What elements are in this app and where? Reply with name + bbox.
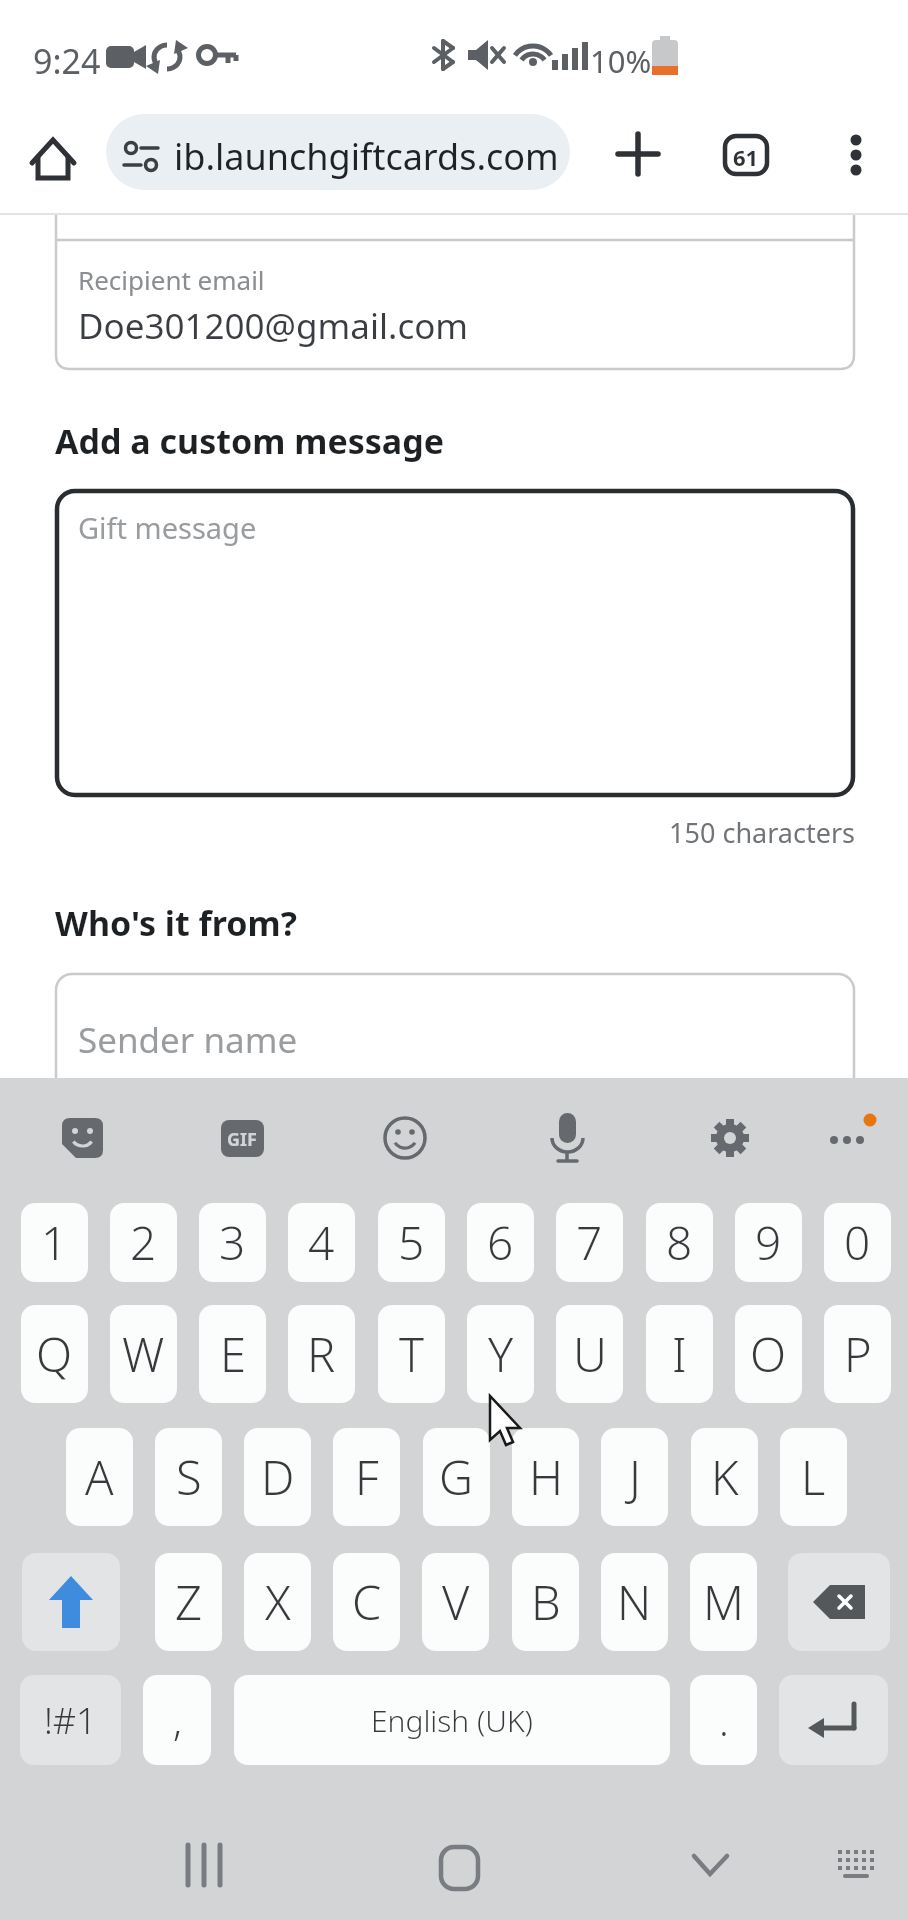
button[interactable]: 3 — [199, 1203, 266, 1282]
button[interactable]: 4 — [288, 1203, 355, 1282]
button[interactable]: 2 — [110, 1203, 177, 1282]
button[interactable]: L — [780, 1428, 847, 1526]
staticText: !#1 — [44, 1696, 97, 1745]
button[interactable] — [820, 1830, 890, 1900]
staticText: 6 — [487, 1211, 514, 1274]
button[interactable]: R — [288, 1305, 355, 1403]
button[interactable]: B — [512, 1553, 579, 1651]
button[interactable] — [414, 1830, 504, 1900]
button[interactable]: O — [735, 1305, 802, 1403]
button[interactable] — [818, 1108, 878, 1168]
staticText: Y — [488, 1322, 514, 1386]
staticText: 0 — [844, 1211, 871, 1274]
staticText: . — [719, 1693, 729, 1747]
button[interactable]: English (UK) — [234, 1675, 670, 1765]
button[interactable] — [788, 1553, 890, 1651]
button[interactable]: J — [601, 1428, 668, 1526]
staticText: ib.launchgiftcards.com — [174, 132, 559, 181]
button[interactable]: Z — [155, 1553, 222, 1651]
button[interactable]: Recipient email — [56, 240, 854, 369]
button[interactable]: !#1 — [20, 1675, 121, 1765]
button[interactable]: 8 — [646, 1203, 713, 1282]
staticText: H — [529, 1445, 563, 1509]
button[interactable]: 5 — [378, 1203, 445, 1282]
staticText: X — [265, 1570, 291, 1634]
button[interactable]: Gift message — [57, 491, 853, 795]
button[interactable]: 61 — [716, 126, 776, 184]
button[interactable]: M — [690, 1553, 757, 1651]
staticText: R — [307, 1322, 336, 1386]
button[interactable]: P — [824, 1305, 891, 1403]
staticText: N — [617, 1570, 652, 1634]
button[interactable] — [212, 1108, 272, 1168]
button[interactable]: K — [691, 1428, 758, 1526]
button[interactable] — [826, 124, 886, 184]
staticText: 61 — [733, 142, 759, 172]
button[interactable]: F — [333, 1428, 400, 1526]
button[interactable]: D — [244, 1428, 311, 1526]
button[interactable] — [537, 1108, 597, 1168]
staticText: O — [750, 1322, 787, 1386]
button[interactable]: U — [556, 1305, 623, 1403]
button[interactable]: Q — [21, 1305, 88, 1403]
button[interactable]: 1 — [21, 1203, 88, 1282]
button[interactable] — [779, 1675, 888, 1765]
staticText: T — [399, 1322, 424, 1386]
button[interactable] — [375, 1108, 435, 1168]
button[interactable]: T — [378, 1305, 445, 1403]
staticText: 4 — [308, 1211, 335, 1274]
staticText: 9 — [755, 1211, 782, 1274]
button[interactable]: , — [143, 1675, 211, 1765]
button[interactable]: W — [110, 1305, 177, 1403]
staticText: A — [85, 1445, 114, 1509]
staticText: Add a custom message — [55, 418, 444, 464]
button[interactable]: V — [422, 1553, 489, 1651]
button[interactable]: 0 — [824, 1203, 891, 1282]
button[interactable] — [608, 124, 668, 184]
button[interactable]: 6 — [467, 1203, 534, 1282]
button[interactable] — [700, 1108, 760, 1168]
button[interactable]: X — [244, 1553, 311, 1651]
button[interactable]: . — [690, 1675, 757, 1765]
staticText: V — [442, 1570, 470, 1634]
staticText: K — [711, 1445, 739, 1509]
staticText: J — [629, 1445, 641, 1509]
staticText: 9:24 — [33, 38, 101, 84]
staticText: E — [220, 1322, 246, 1386]
staticText: U — [573, 1322, 607, 1386]
button[interactable]: ib.launchgiftcards.com — [106, 114, 570, 190]
staticText: English (UK) — [371, 1700, 533, 1741]
button[interactable]: Y — [467, 1305, 534, 1403]
staticText: 2 — [130, 1211, 157, 1274]
staticText: GIF — [227, 1127, 257, 1152]
button[interactable]: 7 — [556, 1203, 623, 1282]
button[interactable] — [22, 1553, 120, 1651]
staticText: D — [261, 1445, 295, 1509]
staticText: 150 characters — [669, 814, 855, 851]
button[interactable]: I — [646, 1305, 713, 1403]
button[interactable]: N — [601, 1553, 668, 1651]
staticText: L — [801, 1445, 826, 1509]
staticText: 7 — [576, 1211, 603, 1274]
button[interactable]: S — [155, 1428, 222, 1526]
button[interactable]: G — [423, 1428, 490, 1526]
button[interactable]: 9 — [735, 1203, 802, 1282]
staticText: C — [352, 1570, 382, 1634]
staticText: B — [531, 1570, 561, 1634]
staticText: G — [439, 1445, 474, 1509]
button[interactable] — [20, 132, 86, 188]
staticText: Recipient email — [78, 262, 265, 297]
button[interactable]: A — [66, 1428, 133, 1526]
button[interactable] — [666, 1830, 756, 1900]
staticText: M — [703, 1570, 744, 1634]
staticText: 3 — [219, 1211, 246, 1274]
staticText: F — [355, 1445, 379, 1509]
button[interactable]: Sender name — [56, 974, 854, 1078]
button[interactable]: H — [512, 1428, 579, 1526]
button[interactable] — [160, 1830, 250, 1900]
button[interactable]: C — [333, 1553, 400, 1651]
staticText: Q — [36, 1322, 73, 1386]
button[interactable]: E — [199, 1305, 266, 1403]
staticText: S — [176, 1445, 202, 1509]
button[interactable] — [52, 1108, 112, 1168]
